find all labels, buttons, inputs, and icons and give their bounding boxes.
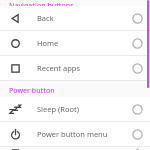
staticText: Home — [37, 38, 132, 48]
staticText: Back — [37, 13, 132, 23]
button[interactable]: Power button menu — [0, 122, 150, 146]
other: Back — [9, 12, 22, 25]
button[interactable]: Back — [0, 6, 150, 30]
other: Recent apps — [9, 62, 22, 75]
button[interactable]: Recent apps — [0, 56, 150, 80]
staticText: Navigation buttons — [9, 1, 74, 7]
other: Power button menu — [9, 128, 22, 141]
other: Sleep — [9, 103, 22, 116]
staticText: Power button menu — [37, 129, 132, 139]
staticText: Recent apps — [37, 63, 132, 73]
button[interactable]: Sleep — [0, 97, 150, 121]
staticText: Sleep (Root) — [37, 104, 132, 114]
button[interactable]: Home — [0, 31, 150, 55]
other: Home — [9, 37, 22, 50]
staticText: Power button — [9, 86, 55, 96]
